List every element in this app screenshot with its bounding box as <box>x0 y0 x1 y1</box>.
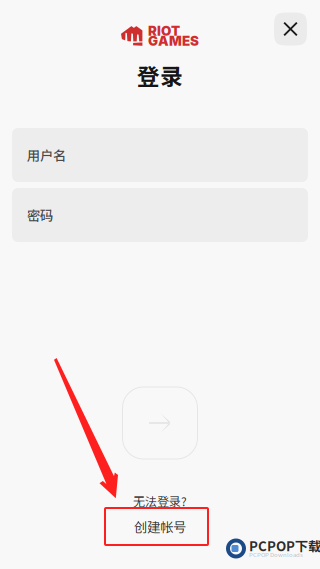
staticText: RIOT <box>148 23 180 39</box>
button[interactable]: 无法登录? <box>133 494 187 508</box>
staticText: 用户名 <box>27 145 66 165</box>
button[interactable]: 创建帐号 <box>108 508 212 545</box>
button[interactable]: Close <box>274 12 307 45</box>
staticText: 密码 <box>27 205 53 225</box>
staticText: PCPOP下载 <box>249 536 320 555</box>
staticText: 创建帐号 <box>134 517 186 536</box>
staticText: GAMES <box>148 33 199 49</box>
staticText: 无法登录? <box>133 492 187 510</box>
button[interactable]: Continue <box>122 387 197 459</box>
staticText: PCPOP Downloads <box>249 550 303 559</box>
staticText: 登录 <box>137 59 183 91</box>
